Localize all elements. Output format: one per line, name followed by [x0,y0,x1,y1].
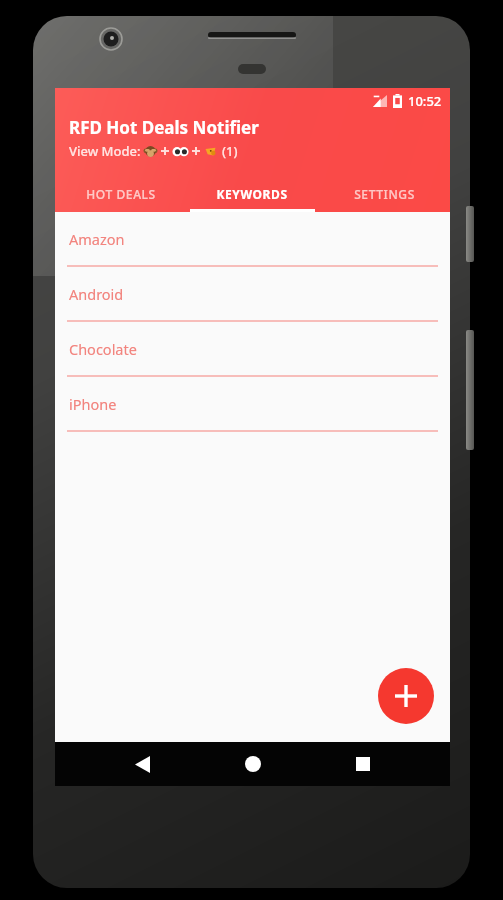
staticText: RFD Hot Deals Notifier [69,116,259,139]
button[interactable]: Amazon [55,212,450,267]
button[interactable]: KEYWORDS [186,176,318,212]
staticText: Chocolate [69,339,137,359]
button[interactable]: HOT DEALS [55,176,186,212]
button[interactable]: Home [229,742,277,786]
staticText: HOT DEALS [86,186,156,202]
button[interactable]: Android [55,267,450,322]
staticText: (1) [222,142,238,160]
button[interactable]: Add keyword [378,668,434,724]
staticText: View Mode: [69,142,144,160]
button[interactable]: Back [118,742,166,786]
staticText: SETTINGS [354,186,415,202]
button[interactable]: View Mode: [69,142,238,160]
staticText: iPhone [69,394,117,414]
button[interactable]: SETTINGS [318,176,450,212]
button[interactable]: Recent apps [339,742,387,786]
staticText: 10:52 [408,92,442,110]
staticText: Android [69,284,124,304]
button[interactable]: iPhone [55,377,450,432]
staticText: KEYWORDS [216,186,288,202]
button[interactable]: Chocolate [55,322,450,377]
staticText: Amazon [69,229,125,249]
